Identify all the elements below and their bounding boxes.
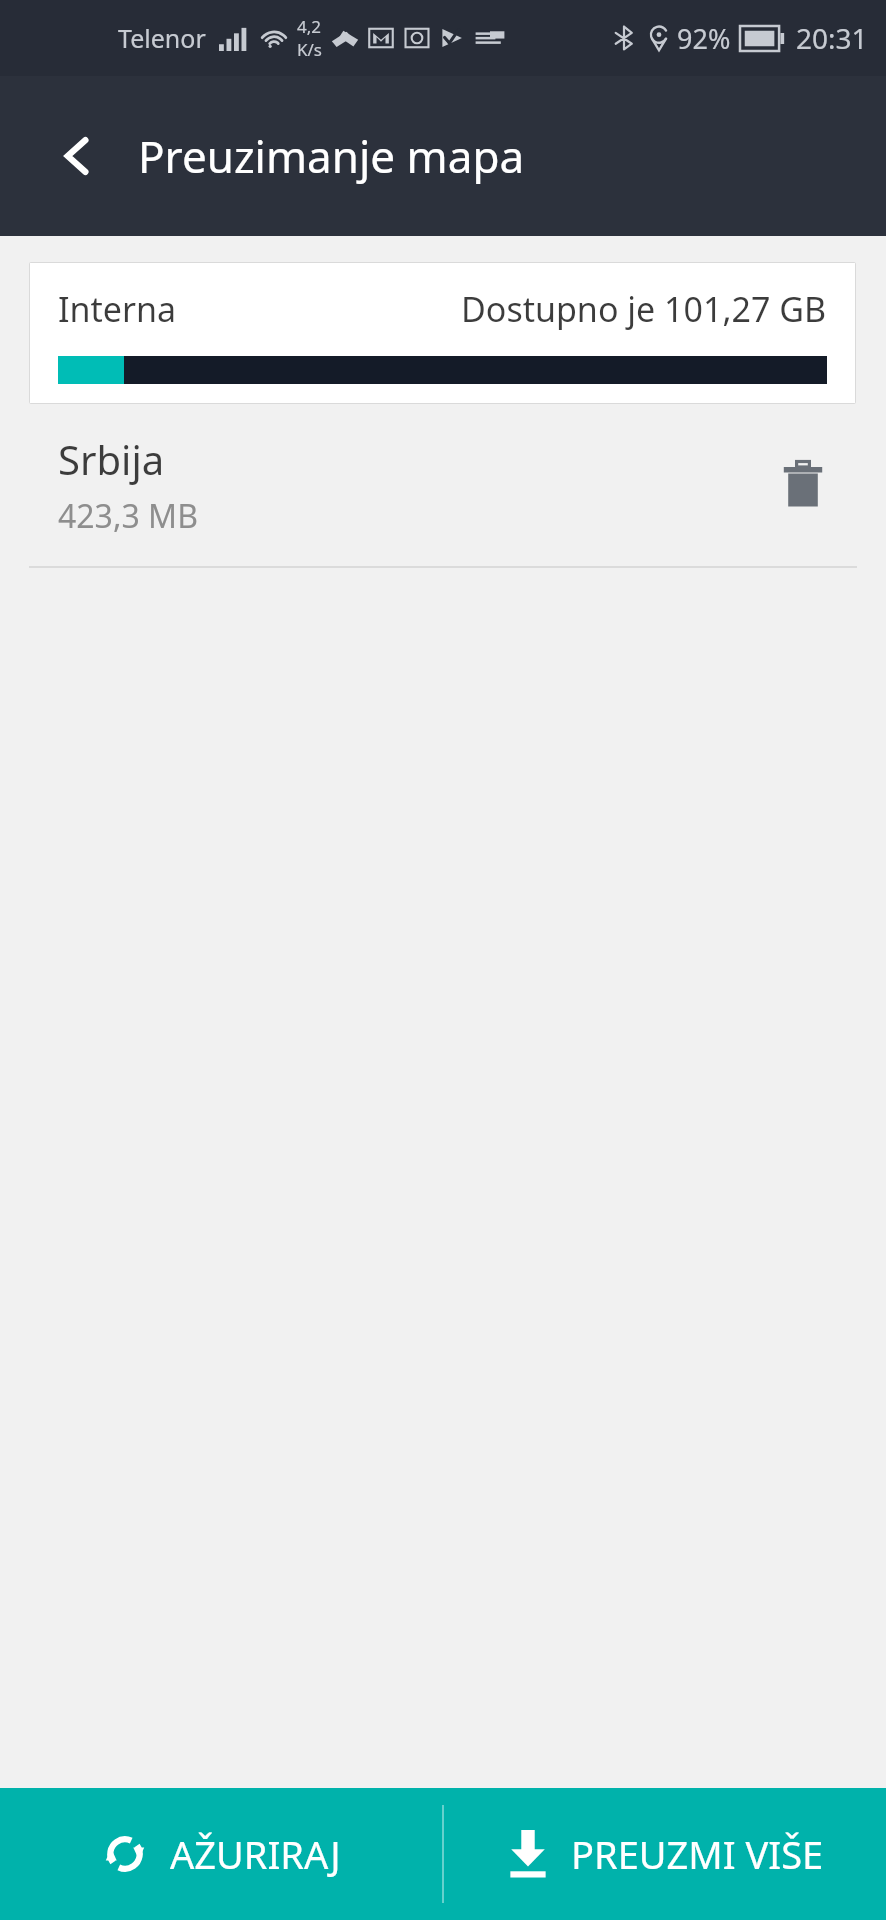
button[interactable]: PREUZMI VIŠE xyxy=(444,1788,886,1920)
button[interactable]: Delete xyxy=(764,446,842,524)
button[interactable]: Interna xyxy=(29,262,856,404)
staticText: 92% xyxy=(677,20,731,57)
button[interactable]: Srbija xyxy=(0,404,886,566)
staticText: Interna xyxy=(58,286,177,332)
staticText: Telenor xyxy=(118,21,206,55)
button[interactable]: AŽURIRAJ xyxy=(0,1788,442,1920)
staticText: Dostupno je 101,27 GB xyxy=(461,286,827,332)
staticText: 20:31 xyxy=(796,19,868,57)
staticText: 4,2 xyxy=(297,15,322,38)
staticText: Preuzimanje mapa xyxy=(138,126,525,186)
button[interactable]: Back xyxy=(40,119,114,193)
staticText: 423,3 MB xyxy=(58,494,198,538)
staticText: Srbija xyxy=(58,432,165,486)
staticText: AŽURIRAJ xyxy=(170,1828,341,1880)
staticText: K/s xyxy=(297,38,322,61)
staticText: PREUZMI VIŠE xyxy=(571,1828,824,1880)
